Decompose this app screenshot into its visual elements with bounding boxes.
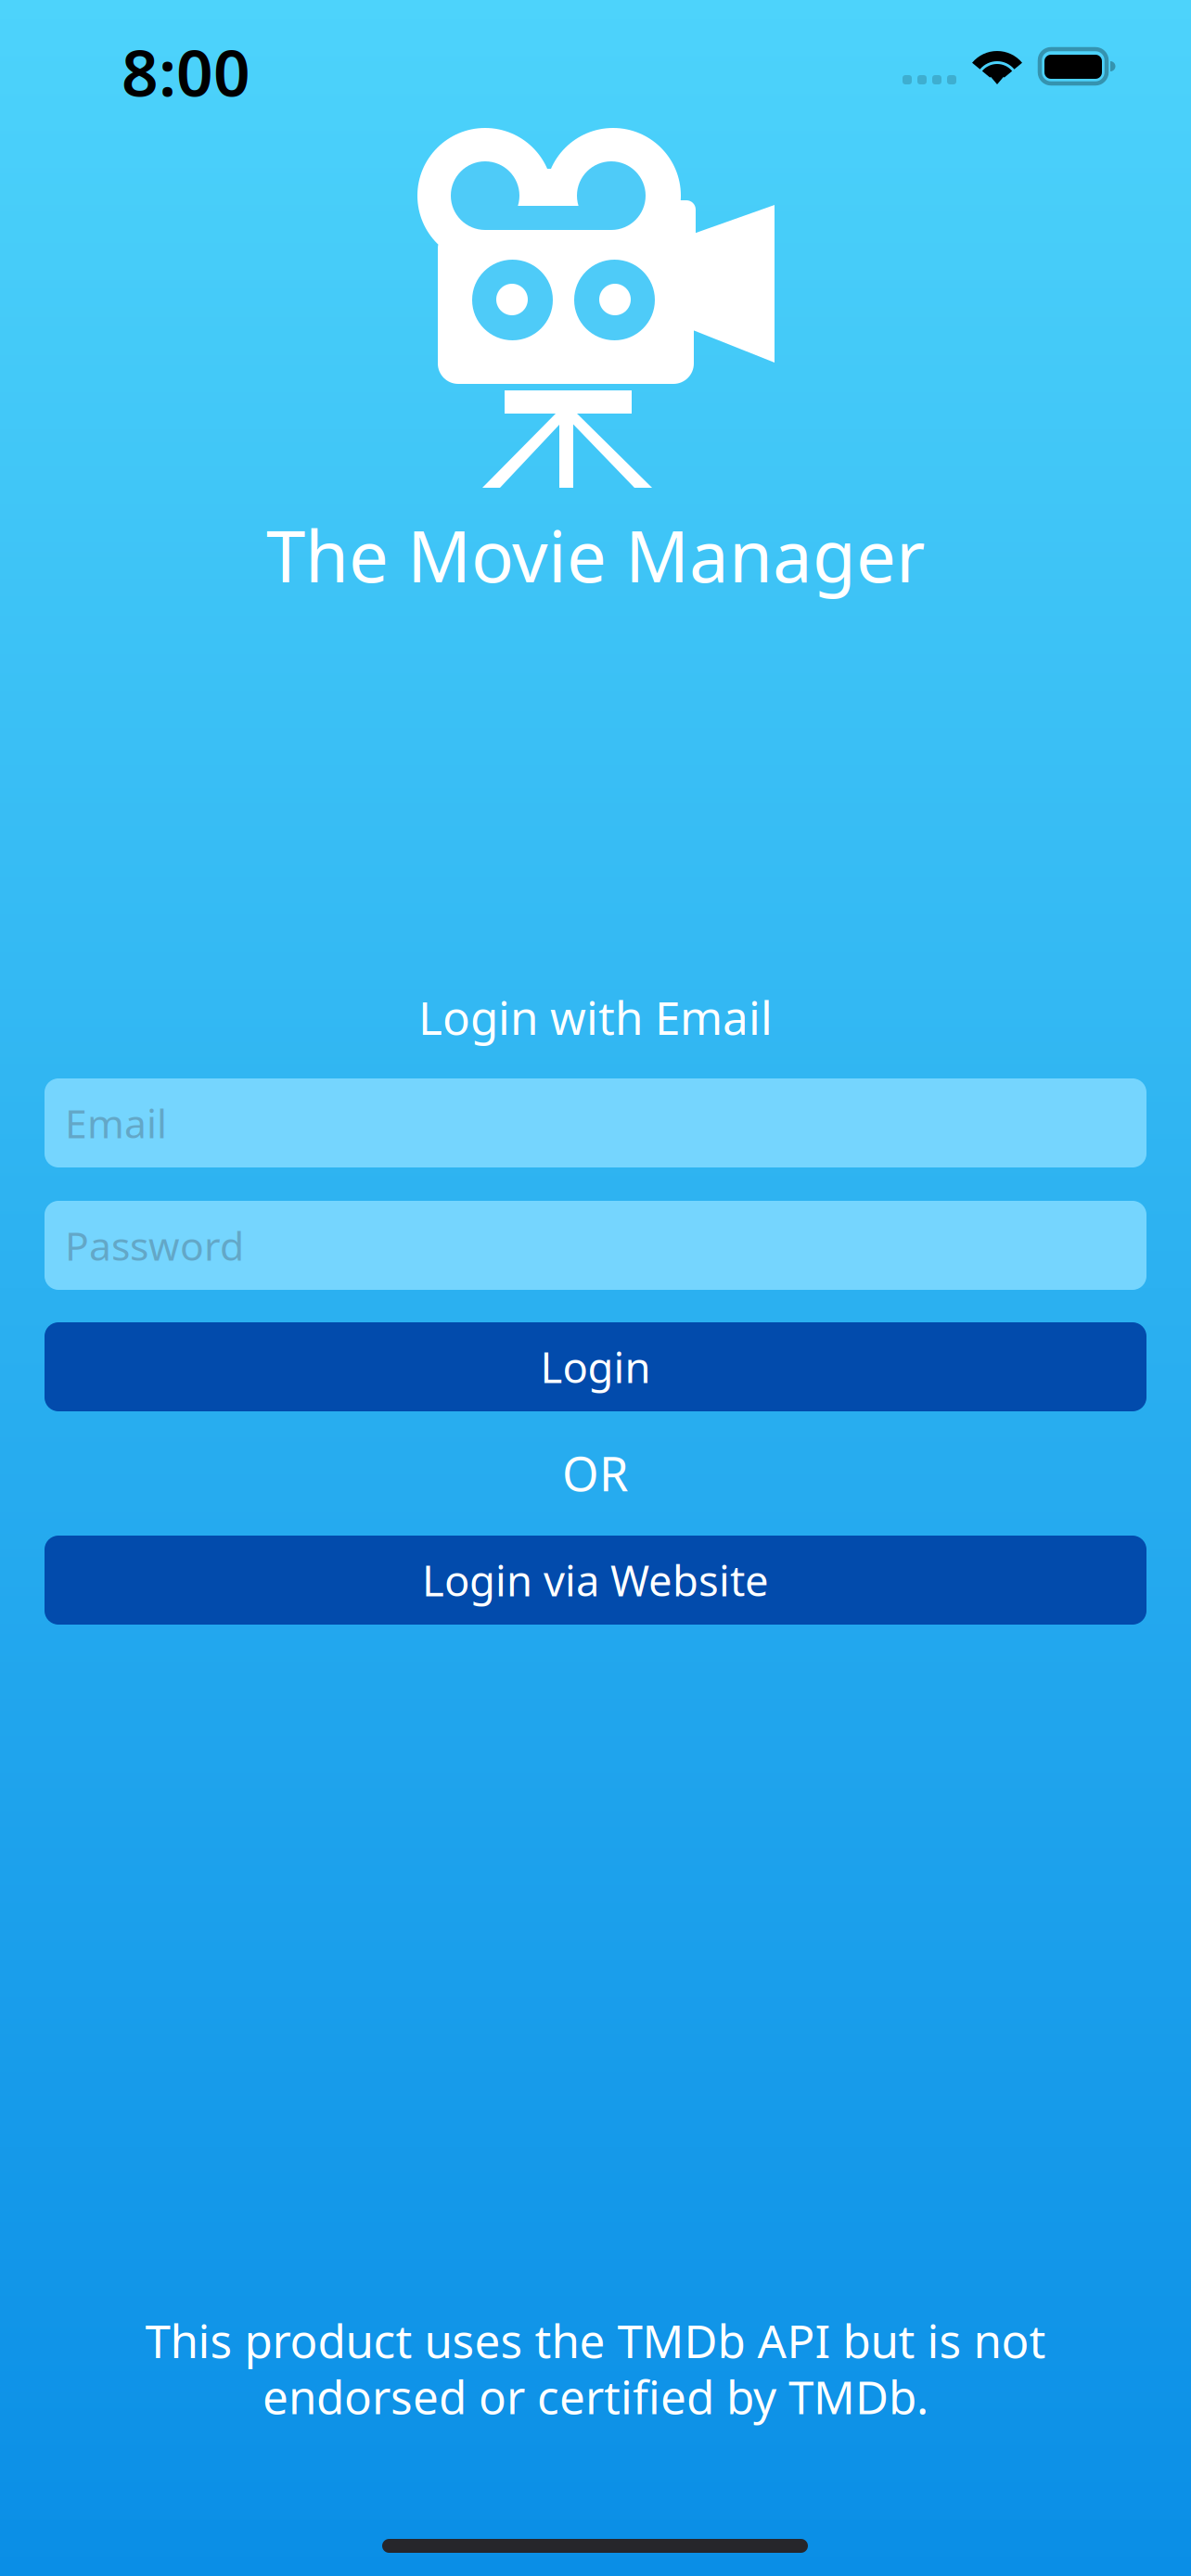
- staticText: The Movie Manager: [266, 508, 925, 602]
- button[interactable]: Login: [45, 1322, 1146, 1411]
- staticText: Login via Website: [422, 1552, 769, 1608]
- staticText: Login: [540, 1339, 651, 1395]
- staticText: Email: [65, 1097, 167, 1149]
- staticText: Login with Email: [418, 987, 773, 1047]
- staticText: 8:00: [122, 29, 250, 114]
- staticText: Password: [65, 1219, 244, 1272]
- staticText: This product uses the TMDb API but is no…: [145, 2310, 1046, 2371]
- staticText: OR: [562, 1442, 629, 1504]
- button[interactable]: Login via Website: [45, 1536, 1146, 1625]
- staticText: endorsed or certified by TMDb.: [263, 2366, 928, 2427]
